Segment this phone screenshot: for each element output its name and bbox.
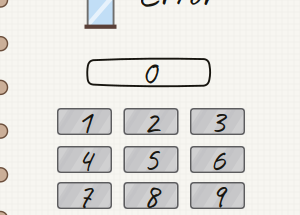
- staticText: 7: [76, 174, 92, 215]
- button[interactable]: 1: [57, 108, 112, 135]
- staticText: Error: [137, 0, 214, 18]
- button[interactable]: 5: [123, 146, 178, 173]
- staticText: 5: [143, 138, 159, 181]
- staticText: 0: [140, 50, 156, 95]
- button[interactable]: 7: [57, 182, 112, 209]
- staticText: 9: [209, 174, 225, 215]
- button[interactable]: 2: [123, 108, 178, 135]
- button[interactable]: 4: [57, 146, 112, 173]
- staticText: 1: [76, 100, 92, 143]
- button[interactable]: 6: [190, 146, 245, 173]
- button[interactable]: 9: [190, 182, 245, 209]
- staticText: 8: [143, 174, 159, 215]
- staticText: 2: [143, 100, 159, 143]
- button[interactable]: 3: [190, 108, 245, 135]
- staticText: 6: [209, 138, 225, 181]
- staticText: 3: [209, 100, 225, 143]
- staticText: 4: [76, 138, 92, 181]
- button[interactable]: 8: [123, 182, 178, 209]
